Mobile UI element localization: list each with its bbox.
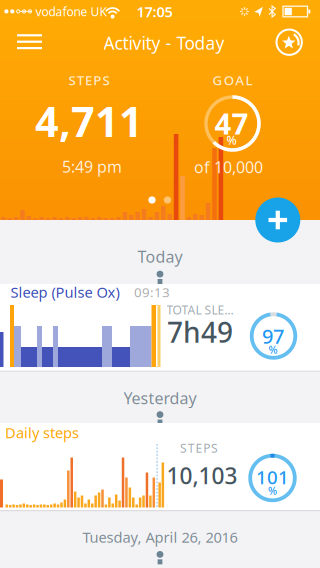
staticText: % <box>226 132 236 148</box>
staticText: 47 <box>214 103 248 142</box>
staticText: Tuesday, April 26, 2016 <box>82 527 237 547</box>
staticText: STEPS <box>68 71 110 89</box>
staticText: 97 <box>262 323 284 349</box>
staticText: 4,711 <box>35 94 143 148</box>
staticText: 7h49 <box>167 313 233 351</box>
staticText: 5:49 pm <box>62 156 122 177</box>
staticText: GOAL <box>213 71 252 89</box>
staticText: Activity - Today <box>103 31 224 54</box>
button[interactable] <box>255 197 300 242</box>
staticText: 09:13 <box>134 283 170 301</box>
button[interactable] <box>17 34 42 49</box>
staticText: Daily steps <box>5 423 79 442</box>
staticText: of 10,000 <box>194 156 263 178</box>
staticText: vodafone UK <box>35 3 106 19</box>
staticText: Sleep (Pulse Ox) <box>10 282 119 302</box>
staticText: Yesterday <box>123 387 196 409</box>
staticText: TOTAL SLE... <box>166 302 233 318</box>
button[interactable]: Sleep (Pulse Ox) <box>0 284 320 370</box>
staticText: % <box>268 342 277 357</box>
button[interactable] <box>273 26 305 58</box>
staticText: Today <box>137 246 182 267</box>
staticText: 10,103 <box>166 460 237 490</box>
staticText: 101 <box>256 465 289 489</box>
staticText: % <box>268 483 277 498</box>
button[interactable]: Daily steps <box>0 423 320 510</box>
staticText: 17:05 <box>136 2 172 21</box>
staticText: STEPS <box>180 440 218 456</box>
